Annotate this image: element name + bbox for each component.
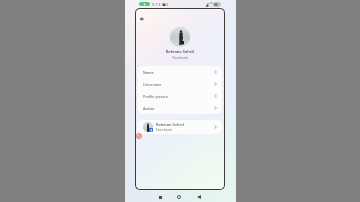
staticText: 5:13 PM	[152, 2, 168, 8]
staticText: Facebook	[156, 127, 173, 132]
staticText: Profile picture	[143, 94, 168, 99]
staticText: Rahman Soheil	[156, 122, 184, 127]
staticText: Facebook	[136, 55, 224, 60]
button[interactable]: Username	[138, 78, 222, 90]
staticText: Username	[143, 82, 162, 87]
button[interactable]: Back	[194, 192, 204, 202]
button[interactable]: Rahman Soheil	[138, 120, 222, 134]
button[interactable]: Home	[174, 192, 184, 202]
button[interactable]: Back	[138, 15, 146, 23]
button[interactable]: Name	[138, 66, 222, 78]
staticText: Rahman Soheil	[136, 49, 224, 54]
staticText: Avatar	[143, 106, 155, 111]
button[interactable]: Recent apps	[155, 192, 165, 202]
button[interactable]: Avatar	[138, 102, 222, 114]
staticText: Name	[143, 70, 154, 75]
button[interactable]: Profile picture	[138, 90, 222, 102]
